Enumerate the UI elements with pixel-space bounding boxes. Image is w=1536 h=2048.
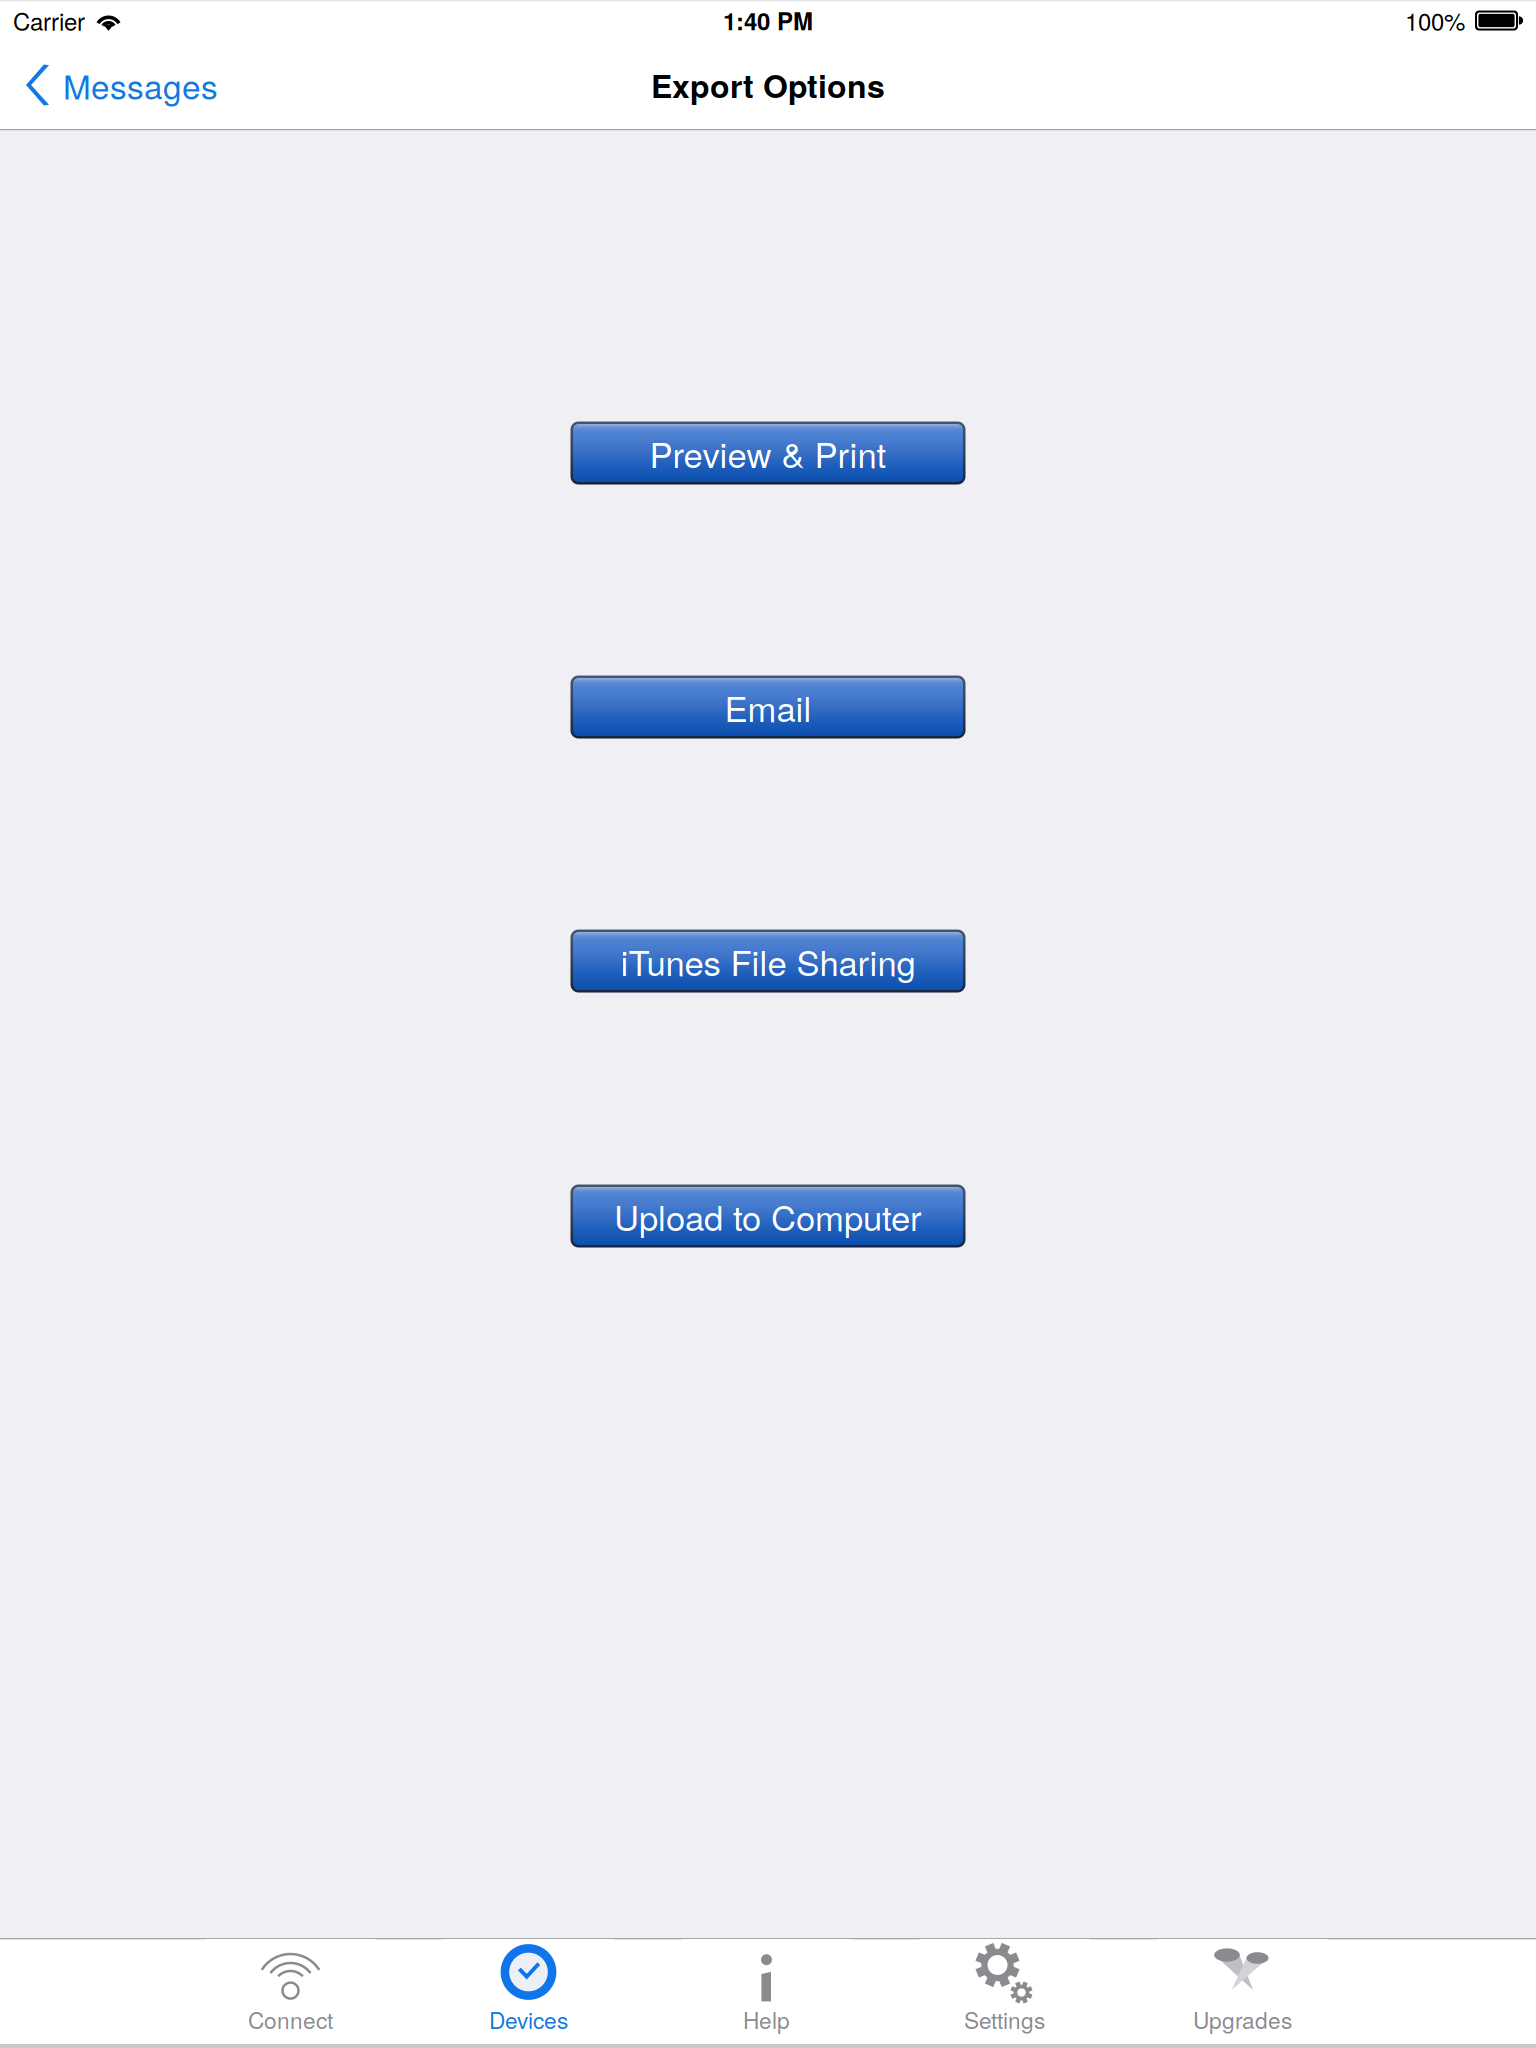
button[interactable]: Email	[570, 675, 965, 738]
staticText: Email	[724, 682, 811, 732]
staticText: Upgrades	[1193, 2003, 1292, 2035]
staticText: Connect	[248, 2003, 333, 2035]
staticText: Export Options	[651, 62, 885, 108]
button[interactable]: iTunes File Sharing	[570, 929, 965, 992]
button[interactable]: Connect	[205, 1939, 375, 2043]
button[interactable]: Messages	[0, 41, 236, 129]
staticText: 100%	[1405, 3, 1465, 38]
button[interactable]: Upload to Computer	[570, 1184, 965, 1247]
staticText: Upload to Computer	[614, 1191, 922, 1241]
staticText: Messages	[63, 61, 218, 109]
staticText: Devices	[489, 2003, 568, 2035]
staticText: Settings	[964, 2003, 1045, 2035]
button[interactable]: Help	[681, 1939, 851, 2043]
button[interactable]: Preview & Print	[570, 421, 965, 484]
staticText: Help	[743, 2003, 790, 2035]
button[interactable]: Settings	[919, 1939, 1089, 2043]
button[interactable]: Devices	[443, 1939, 613, 2043]
staticText: Carrier	[13, 3, 85, 38]
button[interactable]: Upgrades	[1157, 1939, 1327, 2043]
staticText: iTunes File Sharing	[620, 936, 915, 986]
staticText: 1:40 PM	[723, 3, 813, 38]
staticText: Preview & Print	[649, 428, 886, 478]
